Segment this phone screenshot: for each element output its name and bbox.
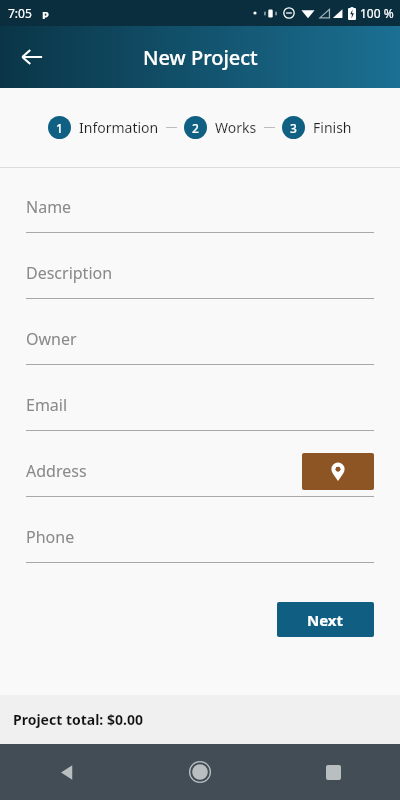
staticText: 3 bbox=[290, 120, 297, 136]
staticText: Finish bbox=[313, 118, 352, 137]
staticText: Address bbox=[26, 460, 87, 482]
button[interactable]: Home bbox=[172, 744, 228, 800]
staticText: Name bbox=[26, 196, 72, 218]
button[interactable]: Email bbox=[0, 380, 400, 446]
button[interactable]: 2 bbox=[184, 116, 257, 139]
staticText: 7:05 bbox=[8, 5, 32, 21]
button[interactable]: Phone bbox=[0, 512, 400, 578]
staticText: 100 % bbox=[360, 5, 394, 21]
staticText: Next bbox=[307, 610, 344, 630]
staticText: 1 bbox=[56, 120, 63, 136]
staticText: Owner bbox=[26, 328, 77, 350]
staticText: Phone bbox=[26, 526, 75, 548]
button[interactable]: Description bbox=[0, 248, 400, 314]
staticText: P bbox=[42, 8, 49, 19]
staticText: New Project bbox=[143, 44, 258, 71]
staticText: Information bbox=[79, 118, 159, 137]
button[interactable]: 1 bbox=[48, 116, 159, 139]
button[interactable]: Address bbox=[0, 446, 400, 512]
staticText: Email bbox=[26, 394, 68, 416]
button[interactable]: Pick location on map bbox=[302, 453, 374, 490]
button[interactable]: Name bbox=[0, 182, 400, 248]
button[interactable]: Recent apps bbox=[305, 744, 361, 800]
staticText: Works bbox=[215, 118, 257, 137]
staticText: Project total: $0.00 bbox=[13, 710, 143, 729]
button[interactable]: Back bbox=[39, 744, 95, 800]
button[interactable]: Owner bbox=[0, 314, 400, 380]
button[interactable]: Next bbox=[277, 602, 374, 637]
staticText: 2 bbox=[192, 120, 199, 136]
staticText: Description bbox=[26, 262, 113, 284]
button[interactable]: Back bbox=[8, 33, 56, 81]
button[interactable]: 3 bbox=[282, 116, 352, 139]
button[interactable]: Project total: $0.00 bbox=[0, 695, 400, 744]
